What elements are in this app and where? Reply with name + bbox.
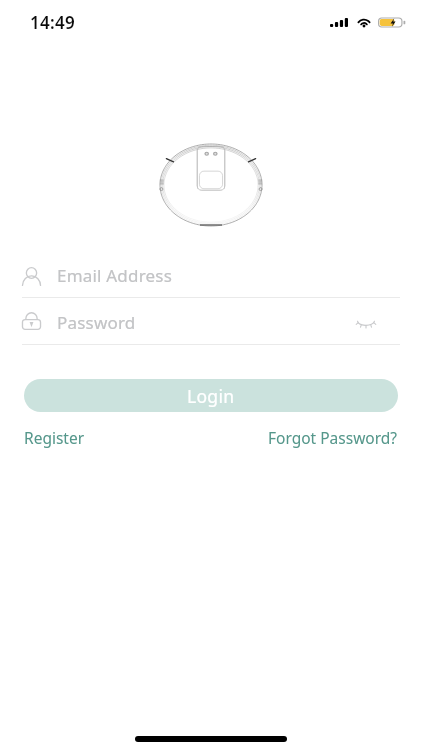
staticText: Register	[24, 427, 85, 448]
button[interactable]: Email Address	[20, 253, 402, 297]
staticText: Password	[57, 311, 136, 334]
button[interactable]: Password	[20, 300, 402, 344]
button[interactable]: Login	[24, 379, 398, 412]
staticText: Email Address	[57, 264, 173, 287]
staticText: 14:49	[30, 11, 76, 34]
button[interactable]: Register	[24, 427, 85, 448]
button[interactable]: Show password	[352, 308, 380, 336]
staticText: Login	[187, 384, 235, 408]
button[interactable]: Forgot Password?	[268, 427, 398, 448]
staticText: Forgot Password?	[268, 427, 398, 448]
